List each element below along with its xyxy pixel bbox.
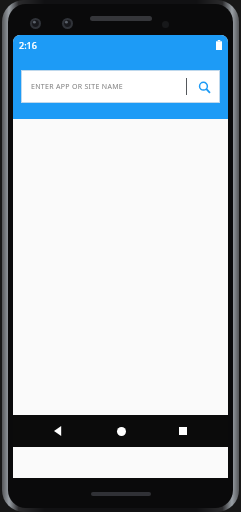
button[interactable]: Search — [194, 77, 214, 97]
button[interactable]: ENTER APP OR SITE NAME — [21, 70, 220, 103]
button[interactable]: Recent apps — [166, 415, 200, 447]
button[interactable]: Home — [104, 415, 138, 447]
staticText: ENTER APP OR SITE NAME — [31, 82, 186, 92]
staticText: 2:16 — [19, 39, 37, 51]
button[interactable]: Back — [41, 415, 75, 447]
